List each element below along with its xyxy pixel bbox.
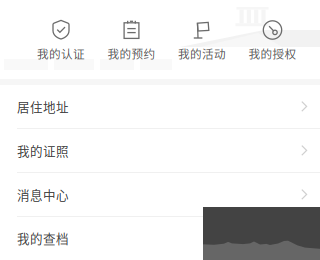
button[interactable]: 我的认证 (26, 0, 96, 79)
button[interactable]: 消息中心 (0, 173, 320, 217)
button[interactable]: 居住地址 (0, 85, 320, 129)
staticText: 我的预约 (107, 45, 155, 62)
staticText: 消息中心 (17, 185, 69, 203)
staticText: 居住地址 (17, 97, 69, 115)
button[interactable]: 我的证照 (0, 129, 320, 173)
staticText: 我的认证 (37, 45, 85, 62)
staticText: 我的活动 (178, 45, 226, 62)
button[interactable]: 我的授权 (237, 0, 308, 79)
staticText: 我的查档 (17, 229, 69, 247)
button[interactable]: 我的活动 (167, 0, 237, 79)
staticText: 我的授权 (248, 45, 296, 62)
staticText: 我的证照 (17, 141, 69, 159)
button[interactable]: 我的查档 (0, 217, 320, 260)
button[interactable]: 我的预约 (96, 0, 167, 79)
